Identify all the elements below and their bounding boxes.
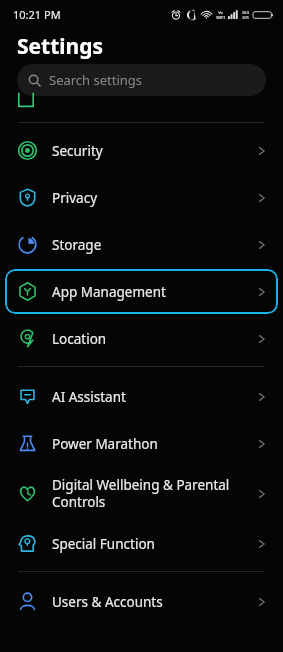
staticText: Security — [52, 142, 258, 160]
staticText: 363 — [242, 10, 249, 15]
button[interactable]: Special Function — [0, 520, 283, 567]
staticText: Special Function — [52, 535, 258, 553]
button[interactable]: Security — [0, 127, 283, 174]
staticText: Settings — [17, 32, 104, 61]
button[interactable]: Power Marathon — [0, 420, 283, 467]
staticText: Storage — [52, 236, 258, 254]
staticText: Search settings — [49, 71, 143, 89]
staticText: Power Marathon — [52, 435, 258, 453]
button[interactable]: AI Assistant — [0, 373, 283, 420]
staticText: 10:21 PM — [13, 7, 61, 22]
staticText: Digital Wellbeing & Parental Controls — [52, 476, 258, 511]
button[interactable]: Privacy — [0, 174, 283, 221]
button[interactable]: Storage — [0, 221, 283, 268]
staticText: App Management — [52, 283, 258, 301]
staticText: Privacy — [52, 189, 258, 207]
button[interactable]: Digital Wellbeing & Parental Controls — [0, 467, 283, 520]
staticText: Users & Accounts — [52, 593, 258, 611]
staticText: Location — [52, 330, 258, 348]
staticText: Vo — [218, 10, 223, 15]
button[interactable]: Users & Accounts — [0, 578, 283, 625]
button[interactable]: App Management — [5, 269, 278, 314]
staticText: WIFI — [216, 15, 225, 20]
button[interactable]: Location — [0, 315, 283, 362]
button[interactable]: Search settings — [17, 64, 266, 96]
staticText: K/S — [242, 15, 249, 20]
staticText: AI Assistant — [52, 388, 258, 406]
